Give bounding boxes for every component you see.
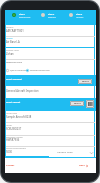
staticText: SELECT (82, 80, 89, 83)
staticText: SELECT (74, 102, 81, 105)
button[interactable] (6, 135, 95, 147)
button[interactable]: SELECT (78, 79, 92, 84)
staticText: Aircraft # (6, 26, 14, 28)
staticText: General Aircraft Inspection (6, 89, 39, 93)
button[interactable] (41, 11, 61, 20)
staticText: Inspector Name (6, 49, 19, 51)
staticText: Inspection Info (19, 16, 31, 18)
button[interactable] (5, 98, 96, 111)
staticText: Air Base LA (6, 40, 20, 44)
staticText: Nautical Miles (57, 150, 73, 153)
staticText: 5000 (6, 150, 12, 154)
staticText: Detailed Inspection (30, 69, 50, 72)
staticText: Aircraft Name (6, 112, 17, 114)
button[interactable]: SELECT (70, 101, 84, 106)
staticText: NEXT (79, 164, 85, 167)
button[interactable]: Detailed Inspection (26, 68, 50, 72)
staticText: AIRCRAFT1801 (6, 29, 24, 33)
staticText: CANCEL (6, 164, 15, 167)
staticText: SC8UI8O237 (6, 127, 22, 131)
button[interactable] (5, 75, 96, 86)
staticText: Select Checklist (6, 78, 22, 81)
staticText: HW587936 (6, 138, 20, 142)
button[interactable] (69, 11, 89, 20)
staticText: Summary (76, 16, 84, 18)
button[interactable] (52, 147, 93, 155)
button[interactable]: NEXT (79, 162, 91, 169)
button[interactable] (6, 111, 95, 124)
button[interactable]: Quick Inspection (6, 68, 28, 72)
button[interactable] (11, 11, 31, 20)
staticText: Registration Number (6, 136, 23, 138)
button[interactable] (6, 48, 95, 59)
staticText: Step 3 (76, 13, 83, 16)
button[interactable] (6, 123, 95, 135)
staticText: Location (6, 37, 13, 39)
staticText: Current Practice Reading (6, 147, 26, 149)
button[interactable] (6, 36, 95, 48)
button[interactable] (6, 147, 49, 157)
staticText: Step 2 (48, 13, 55, 16)
staticText: Inspection (48, 16, 56, 18)
staticText: Select Aircraft (6, 101, 21, 104)
button[interactable]: CANCEL (6, 162, 18, 169)
button[interactable] (6, 25, 95, 37)
button[interactable]: Scan barcode (86, 100, 94, 108)
staticText: Step 1 (19, 13, 26, 16)
staticText: Sample Aircraft 8238 (6, 115, 32, 119)
staticText: Zohan (6, 52, 14, 56)
staticText: Aircraft (6, 124, 12, 126)
staticText: Quick Inspection (10, 69, 28, 72)
staticText: Inspection Type (6, 61, 22, 64)
